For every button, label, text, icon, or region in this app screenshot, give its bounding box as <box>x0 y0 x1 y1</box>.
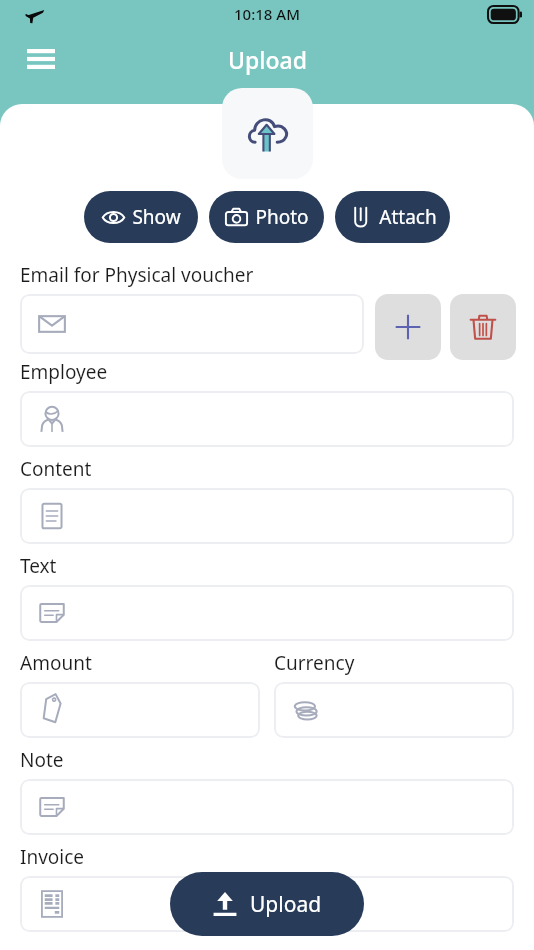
staticText: Email for Physical voucher <box>20 262 254 288</box>
staticText: Currency <box>274 650 355 676</box>
button[interactable]: Menu <box>18 36 64 82</box>
button[interactable]: Photo <box>209 191 324 243</box>
staticText: Employee <box>20 359 108 385</box>
staticText: 10:18 AM <box>234 4 300 24</box>
button[interactable] <box>20 294 364 354</box>
button[interactable] <box>20 585 514 641</box>
staticText: Amount <box>20 650 92 676</box>
button[interactable] <box>20 876 514 932</box>
staticText: Upload <box>250 890 322 919</box>
button[interactable] <box>274 682 514 738</box>
staticText: Invoice <box>20 844 85 870</box>
button[interactable] <box>20 391 514 447</box>
button[interactable] <box>20 682 260 738</box>
staticText: Photo <box>255 204 309 230</box>
button[interactable]: Add <box>375 294 441 360</box>
staticText: Note <box>20 747 64 773</box>
button[interactable]: Upload <box>170 872 364 936</box>
staticText: Upload <box>228 44 307 75</box>
button[interactable]: Attach <box>335 191 450 243</box>
button[interactable] <box>20 488 514 544</box>
button[interactable]: Show <box>84 191 198 243</box>
staticText: Text <box>20 553 57 579</box>
staticText: Show <box>132 204 181 230</box>
staticText: Attach <box>379 204 437 230</box>
button[interactable]: Delete <box>450 294 516 360</box>
button[interactable] <box>20 779 514 835</box>
staticText: Content <box>20 456 92 482</box>
button[interactable]: Cloud upload <box>222 88 313 179</box>
